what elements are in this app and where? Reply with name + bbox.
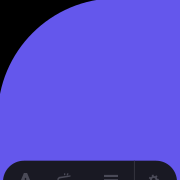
button[interactable]: Library [89, 175, 133, 180]
button[interactable]: Home [4, 173, 47, 180]
button[interactable]: Settings [134, 175, 174, 180]
button[interactable]: Discover [57, 173, 101, 180]
